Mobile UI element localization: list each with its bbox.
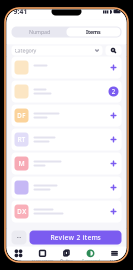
button[interactable]: Items bbox=[66, 27, 120, 36]
button[interactable]: RT bbox=[11, 128, 121, 150]
staticText: DX bbox=[17, 207, 26, 216]
button[interactable]: POS bbox=[6, 247, 30, 266]
button[interactable]: More options bbox=[11, 230, 26, 244]
staticText: ▮▮▮ bbox=[102, 9, 108, 14]
staticText: More bbox=[109, 258, 119, 264]
button[interactable]: Connected bbox=[78, 247, 102, 266]
staticText: Category bbox=[14, 47, 36, 54]
staticText: Review 2 items bbox=[50, 233, 100, 242]
staticText: Transactions bbox=[31, 258, 53, 264]
button[interactable]: M bbox=[11, 152, 121, 174]
button[interactable]: Transactions bbox=[30, 247, 54, 266]
staticText: Connected bbox=[81, 258, 99, 264]
staticText: Orders bbox=[60, 258, 73, 264]
button[interactable]: Numpad bbox=[12, 27, 66, 36]
button[interactable]: Search bbox=[105, 45, 121, 55]
button[interactable]: More bbox=[102, 247, 126, 266]
staticText: ◗ bbox=[109, 8, 112, 15]
button[interactable]: DF bbox=[11, 104, 121, 126]
button[interactable] bbox=[11, 56, 121, 78]
staticText: RT bbox=[17, 135, 25, 144]
staticText: 9:41 bbox=[13, 7, 27, 16]
staticText: Numpad bbox=[29, 28, 50, 36]
button[interactable]: Category bbox=[11, 45, 102, 55]
button[interactable] bbox=[11, 176, 121, 198]
button[interactable]: Review 2 items bbox=[29, 230, 121, 244]
staticText: POS bbox=[15, 258, 22, 264]
staticText: 2 bbox=[111, 87, 115, 96]
button[interactable] bbox=[11, 80, 121, 102]
staticText: Items bbox=[86, 28, 101, 36]
button[interactable]: Orders bbox=[54, 247, 78, 266]
staticText: DF bbox=[17, 111, 26, 120]
staticText: M bbox=[18, 159, 24, 168]
button[interactable]: DX bbox=[11, 200, 121, 222]
